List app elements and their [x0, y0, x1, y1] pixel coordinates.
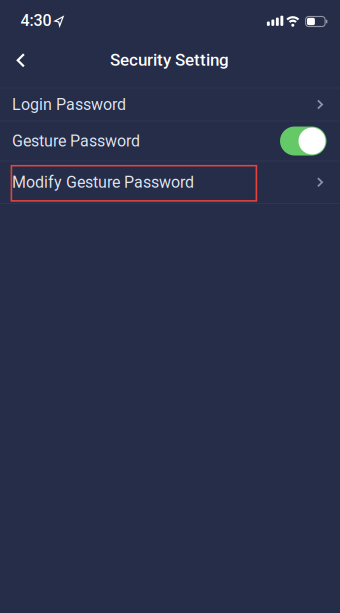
staticText: Login Password: [12, 95, 126, 114]
button[interactable]: Login Password: [0, 88, 340, 120]
staticText: Gesture Password: [12, 132, 140, 150]
button[interactable]: Gesture Password: [280, 126, 326, 155]
button[interactable]: Back: [9, 45, 33, 75]
staticText: 4:30: [20, 11, 51, 30]
staticText: Security Setting: [110, 50, 229, 70]
button[interactable]: Modify Gesture Password: [0, 161, 340, 203]
staticText: Modify Gesture Password: [12, 173, 194, 192]
